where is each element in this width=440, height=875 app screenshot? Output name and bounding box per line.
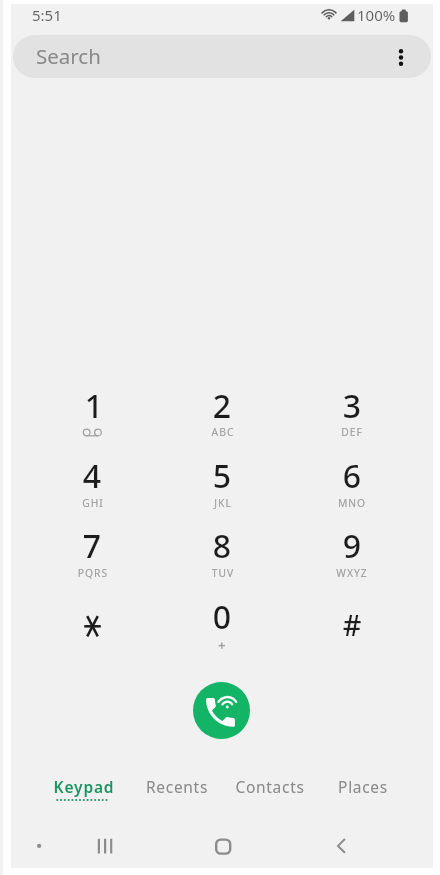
button[interactable]: Recents [131, 766, 223, 810]
staticText: Contacts [224, 776, 316, 797]
staticText: 1 [44, 384, 144, 428]
button[interactable]: # [299, 585, 405, 653]
staticText: 3 [302, 384, 402, 428]
staticText: 5:51 [32, 5, 92, 25]
button[interactable]: Keypad [38, 766, 130, 810]
button[interactable]: 3 [299, 374, 405, 442]
button[interactable]: 4 [39, 444, 145, 512]
staticText: 9 [302, 524, 402, 568]
staticText: DEF [302, 425, 402, 439]
staticText: WXYZ [302, 566, 402, 580]
button[interactable]: Recent apps [81, 822, 129, 870]
button[interactable]: Back [317, 822, 365, 870]
button[interactable]: 9 [299, 514, 405, 582]
staticText: 100% [357, 5, 417, 25]
button[interactable]: Places [317, 766, 409, 810]
staticText: Keypad [38, 776, 130, 797]
staticText: Search [36, 42, 196, 70]
button[interactable]: Home [199, 822, 247, 870]
staticText: TUV [173, 566, 273, 580]
button[interactable]: 8 [169, 514, 275, 582]
staticText: 4 [42, 454, 142, 498]
staticText: Places [317, 776, 409, 797]
button[interactable]: More options [383, 39, 419, 75]
staticText: 8 [172, 524, 272, 568]
button[interactable]: Call [193, 682, 250, 739]
button[interactable]: 1 [39, 374, 145, 442]
staticText: # [302, 605, 402, 644]
staticText: JKL [173, 496, 273, 510]
staticText: 7 [42, 524, 142, 568]
button[interactable]: 7 [39, 514, 145, 582]
staticText: 2 [172, 384, 272, 428]
button[interactable]: 0 [169, 585, 275, 653]
staticText: 5 [172, 454, 272, 498]
staticText: Recents [131, 776, 223, 797]
button[interactable]: Contacts [224, 766, 316, 810]
button[interactable]: Search [13, 35, 431, 78]
button[interactable]: star [39, 585, 145, 653]
staticText: ABC [173, 425, 273, 439]
staticText: PQRS [43, 566, 143, 580]
staticText: 6 [302, 454, 402, 498]
button[interactable]: 2 [169, 374, 275, 442]
button[interactable]: 5 [169, 444, 275, 512]
staticText: 0 [172, 595, 272, 639]
staticText: GHI [43, 496, 143, 510]
button[interactable]: 6 [299, 444, 405, 512]
staticText: MNO [302, 496, 402, 510]
